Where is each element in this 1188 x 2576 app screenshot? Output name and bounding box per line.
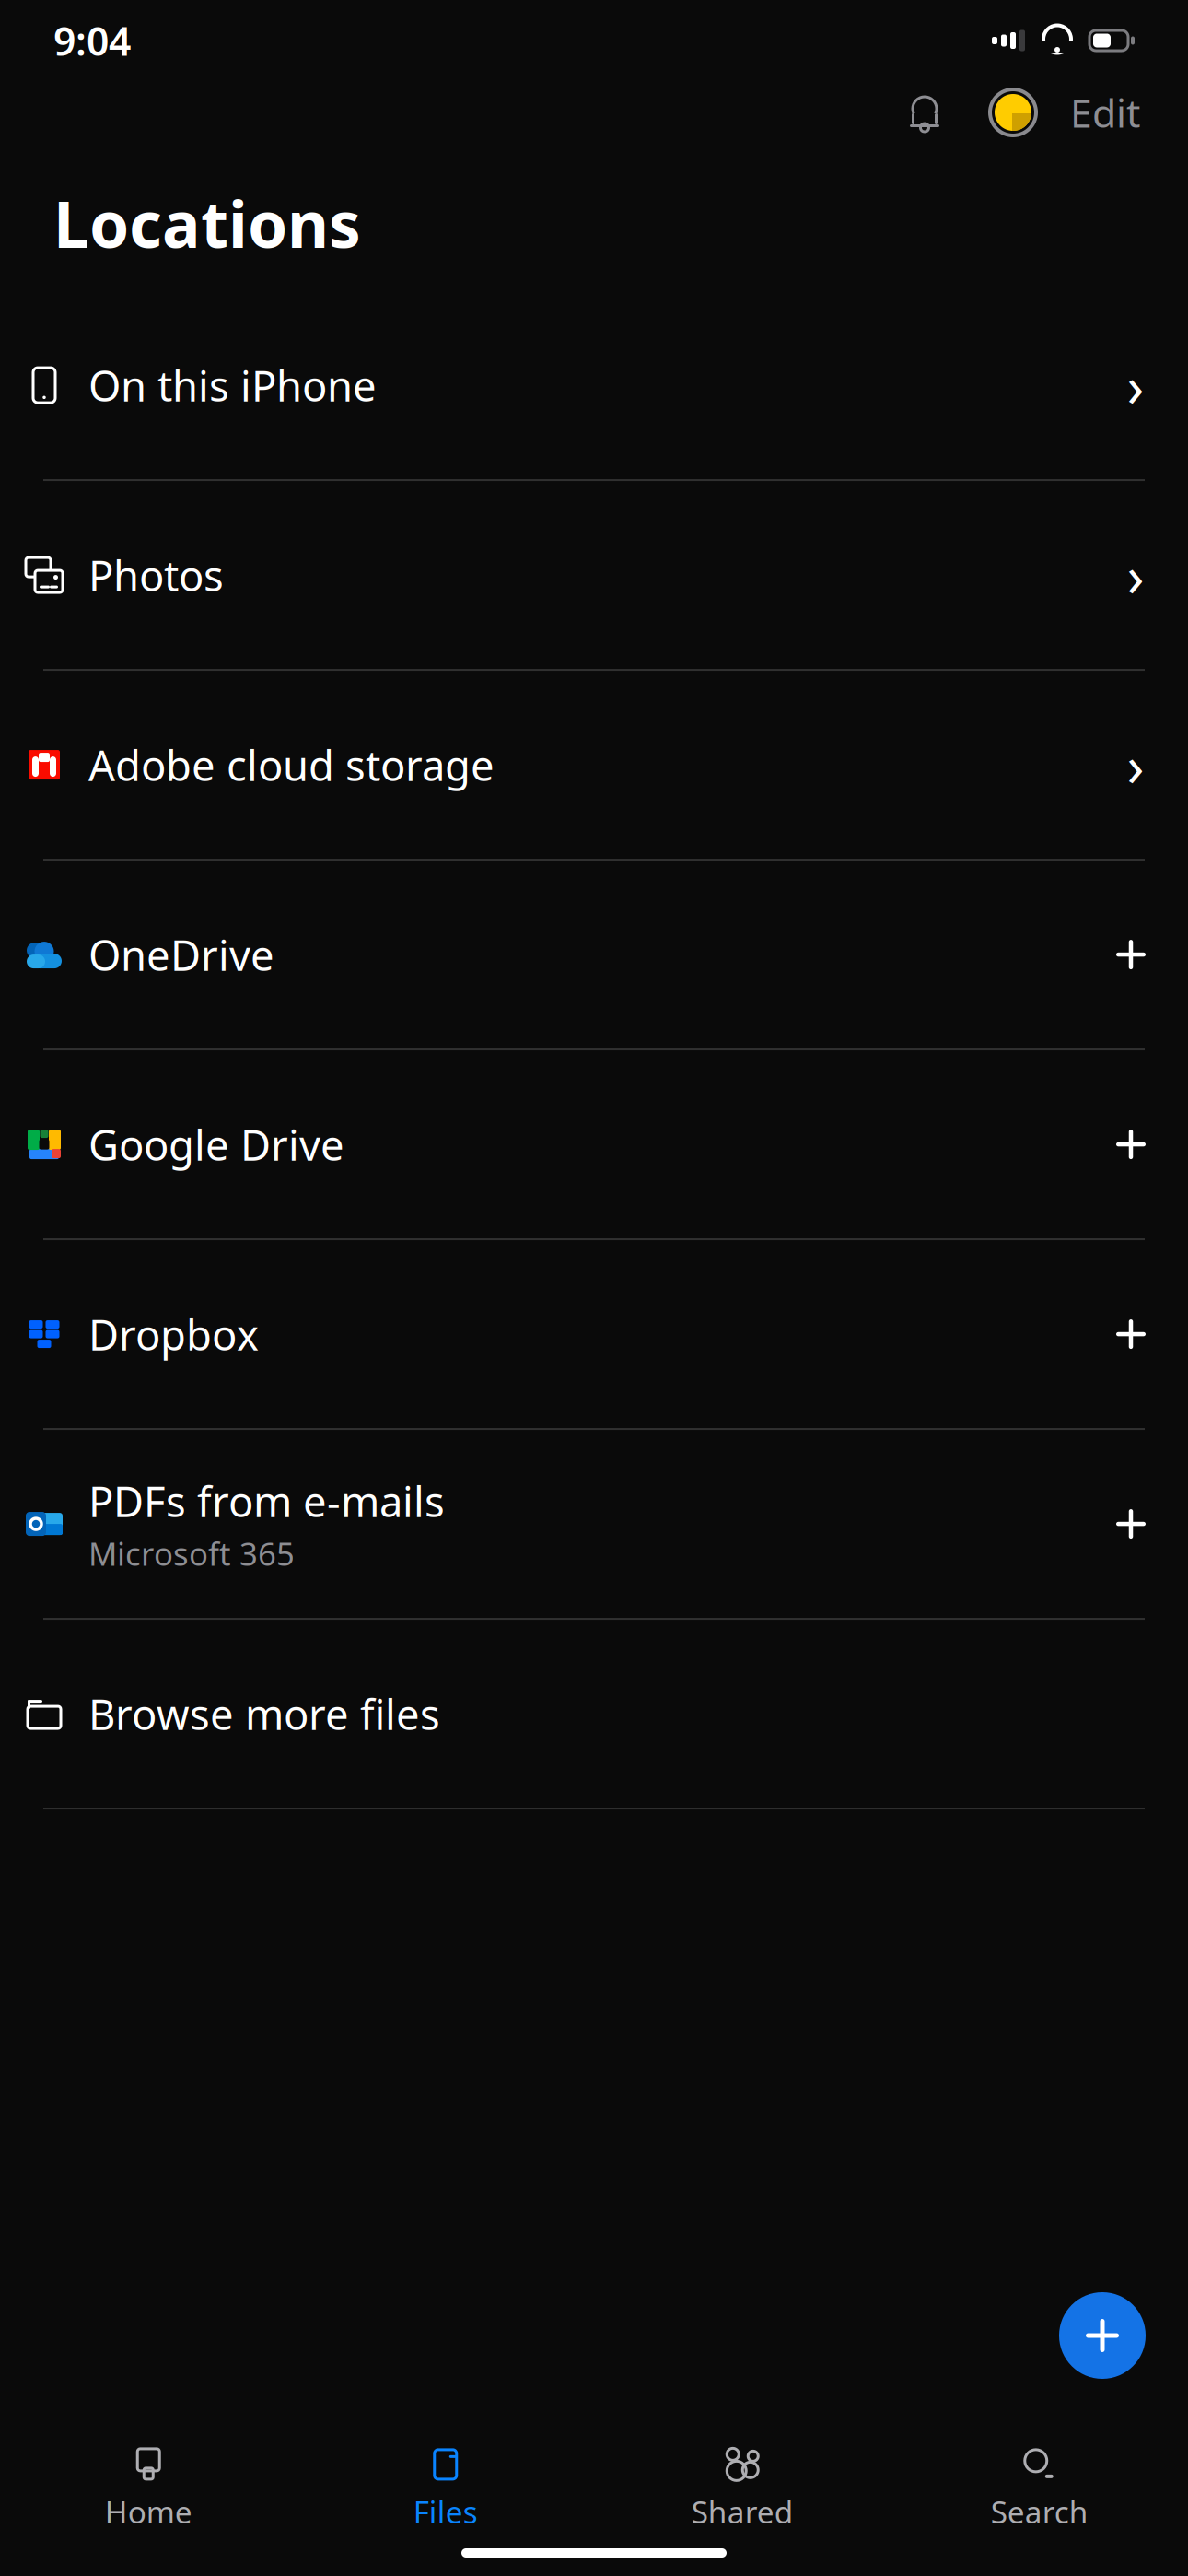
staticText: › bbox=[1127, 348, 1144, 423]
button[interactable]: Browse more files bbox=[0, 1620, 1188, 1808]
staticText: Shared bbox=[691, 2491, 794, 2532]
button[interactable]: Home bbox=[0, 2434, 297, 2539]
staticText: Browse more files bbox=[88, 1686, 440, 1741]
button[interactable]: Account bbox=[984, 83, 1042, 142]
button[interactable]: Adobe cloud storage bbox=[0, 671, 1188, 859]
button[interactable]: Dropbox bbox=[0, 1240, 1188, 1428]
button[interactable]: OneDrive bbox=[0, 861, 1188, 1049]
staticText: On this iPhone bbox=[88, 357, 377, 413]
button[interactable]: Shared bbox=[594, 2434, 891, 2539]
staticText: Dropbox bbox=[88, 1306, 259, 1362]
staticText: OneDrive bbox=[88, 927, 274, 982]
staticText: Adobe cloud storage bbox=[88, 737, 495, 793]
staticText: Files bbox=[413, 2491, 478, 2532]
staticText: › bbox=[1127, 727, 1144, 802]
staticText: Google Drive bbox=[88, 1117, 344, 1172]
staticText: 9:04 bbox=[53, 14, 131, 67]
button[interactable]: On this iPhone bbox=[0, 291, 1188, 479]
staticText: Edit bbox=[1070, 86, 1140, 139]
staticText: Photos bbox=[88, 547, 224, 603]
button[interactable]: Notifications bbox=[895, 83, 954, 142]
staticText: PDFs from e-mails bbox=[88, 1473, 445, 1529]
button[interactable]: Google Drive bbox=[0, 1050, 1188, 1238]
staticText: Microsoft 365 bbox=[88, 1532, 295, 1575]
button[interactable]: Search bbox=[891, 2434, 1188, 2539]
button[interactable]: Files bbox=[297, 2434, 594, 2539]
staticText: Home bbox=[105, 2491, 192, 2532]
button[interactable]: Photos bbox=[0, 481, 1188, 669]
staticText: › bbox=[1127, 537, 1144, 612]
staticText: Locations bbox=[53, 181, 361, 265]
button[interactable]: PDFs from e-mails bbox=[0, 1430, 1188, 1618]
button[interactable]: Edit bbox=[1061, 75, 1149, 150]
staticText: Search bbox=[991, 2491, 1088, 2532]
button[interactable]: Create bbox=[1059, 2292, 1146, 2379]
